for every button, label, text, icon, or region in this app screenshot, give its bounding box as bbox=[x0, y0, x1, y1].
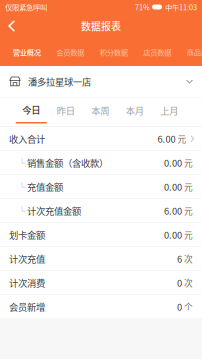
staticText: └ bbox=[18, 181, 26, 193]
staticText: 0 bbox=[177, 300, 182, 313]
staticText: 昨日 bbox=[57, 104, 75, 117]
button[interactable]: 会员新增 bbox=[0, 295, 202, 319]
button[interactable]: 商品数据 bbox=[179, 38, 202, 66]
button[interactable]: └ bbox=[0, 199, 202, 223]
staticText: 元 bbox=[177, 132, 186, 145]
button[interactable]: 本月 bbox=[117, 97, 152, 126]
staticText: 元 bbox=[184, 228, 193, 241]
staticText: 6 bbox=[177, 252, 182, 265]
staticText: 次 bbox=[184, 252, 193, 265]
button[interactable]: 划卡金额 bbox=[0, 223, 202, 247]
button[interactable]: └ bbox=[0, 175, 202, 199]
button[interactable]: 会员数据 bbox=[48, 38, 92, 66]
staticText: 0.00 bbox=[164, 228, 182, 241]
staticText: 充值金额 bbox=[27, 180, 63, 193]
button[interactable]: 今日 bbox=[14, 97, 48, 126]
button[interactable]: 昨日 bbox=[48, 97, 83, 126]
staticText: 本周 bbox=[91, 104, 109, 117]
staticText: 0 bbox=[177, 276, 182, 289]
staticText: └ bbox=[18, 157, 26, 169]
staticText: 71% bbox=[135, 2, 150, 12]
staticText: 销售金额（含收款） bbox=[27, 156, 108, 169]
staticText: 营业概况 bbox=[13, 47, 41, 57]
button[interactable]: Back bbox=[0, 14, 24, 38]
button[interactable]: 上月 bbox=[152, 97, 186, 126]
staticText: 中午11:03 bbox=[165, 2, 197, 12]
button[interactable]: └ bbox=[0, 151, 202, 175]
staticText: 数据报表 bbox=[81, 19, 121, 33]
staticText: 元 bbox=[184, 180, 193, 193]
staticText: 会员数据 bbox=[56, 47, 84, 57]
staticText: 仅限紧急呼叫 bbox=[5, 2, 47, 12]
staticText: 潘多拉星球一店 bbox=[28, 75, 91, 88]
button[interactable]: 积分数据 bbox=[92, 38, 135, 66]
staticText: 个 bbox=[184, 300, 193, 313]
staticText: 会员新增 bbox=[9, 300, 45, 313]
staticText: 0.00 bbox=[164, 180, 182, 193]
staticText: 次 bbox=[184, 276, 193, 289]
staticText: 商品数据 bbox=[187, 47, 202, 57]
staticText: 0.00 bbox=[164, 156, 182, 169]
button[interactable]: 本周 bbox=[83, 97, 117, 126]
button[interactable]: 潘多拉星球一店 bbox=[0, 66, 202, 97]
staticText: 计次消费 bbox=[9, 276, 45, 289]
staticText: 6.00 bbox=[157, 132, 175, 145]
staticText: 元 bbox=[184, 204, 193, 217]
staticText: 本月 bbox=[126, 104, 144, 117]
staticText: 今日 bbox=[22, 103, 40, 116]
staticText: 店员数据 bbox=[143, 47, 171, 57]
staticText: 收入合计 bbox=[9, 132, 45, 145]
staticText: 计次充值 bbox=[9, 252, 45, 265]
staticText: 划卡金额 bbox=[9, 228, 45, 241]
button[interactable]: 计次充值 bbox=[0, 247, 202, 271]
button[interactable]: 营业概况 bbox=[5, 38, 48, 66]
staticText: 积分数据 bbox=[100, 47, 128, 57]
staticText: 6.00 bbox=[164, 204, 182, 217]
staticText: 上月 bbox=[160, 104, 178, 117]
button[interactable]: 计次消费 bbox=[0, 271, 202, 295]
button[interactable]: 收入合计 bbox=[0, 127, 202, 151]
staticText: └ bbox=[18, 205, 26, 217]
staticText: 元 bbox=[184, 156, 193, 169]
staticText: 计次充值金额 bbox=[27, 204, 81, 217]
button[interactable]: 店员数据 bbox=[135, 38, 179, 66]
